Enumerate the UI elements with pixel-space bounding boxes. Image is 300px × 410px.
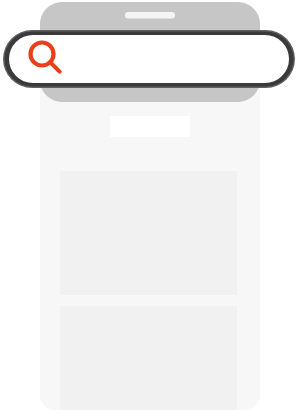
button[interactable]: Search xyxy=(3,30,295,88)
